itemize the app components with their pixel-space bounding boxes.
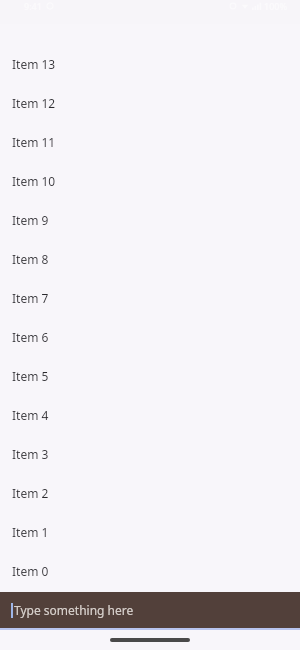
staticText: Item 4 — [12, 407, 49, 423]
staticText: Item 3 — [12, 446, 49, 462]
button[interactable]: Item 1 — [0, 512, 300, 551]
staticText: Item 8 — [12, 251, 49, 267]
button[interactable]: Item 6 — [0, 317, 300, 356]
button[interactable]: Type something here — [0, 592, 300, 628]
button[interactable]: Item 11 — [0, 122, 300, 161]
button[interactable]: Item 0 — [0, 551, 300, 590]
button[interactable]: Item 3 — [0, 434, 300, 473]
button[interactable]: Item 13 — [0, 44, 300, 83]
button[interactable]: Item 7 — [0, 278, 300, 317]
staticText: Item 10 — [12, 173, 56, 189]
staticText: Item 2 — [12, 485, 49, 501]
button[interactable]: Item 2 — [0, 473, 300, 512]
button[interactable]: Item 9 — [0, 200, 300, 239]
staticText: Item 12 — [12, 95, 56, 111]
button[interactable]: Item 4 — [0, 395, 300, 434]
staticText: Item 5 — [12, 368, 49, 384]
staticText: Item 6 — [12, 329, 49, 345]
button[interactable]: Item 12 — [0, 83, 300, 122]
staticText: Item 13 — [12, 56, 56, 72]
button[interactable]: Item 10 — [0, 161, 300, 200]
staticText: Type something here — [14, 602, 134, 618]
button[interactable]: Item 5 — [0, 356, 300, 395]
staticText: Item 9 — [12, 212, 49, 228]
button[interactable]: Item 8 — [0, 239, 300, 278]
staticText: Item 7 — [12, 290, 49, 306]
staticText: Item 11 — [12, 134, 56, 150]
staticText: Item 1 — [12, 524, 49, 540]
staticText: Item 0 — [12, 563, 49, 579]
